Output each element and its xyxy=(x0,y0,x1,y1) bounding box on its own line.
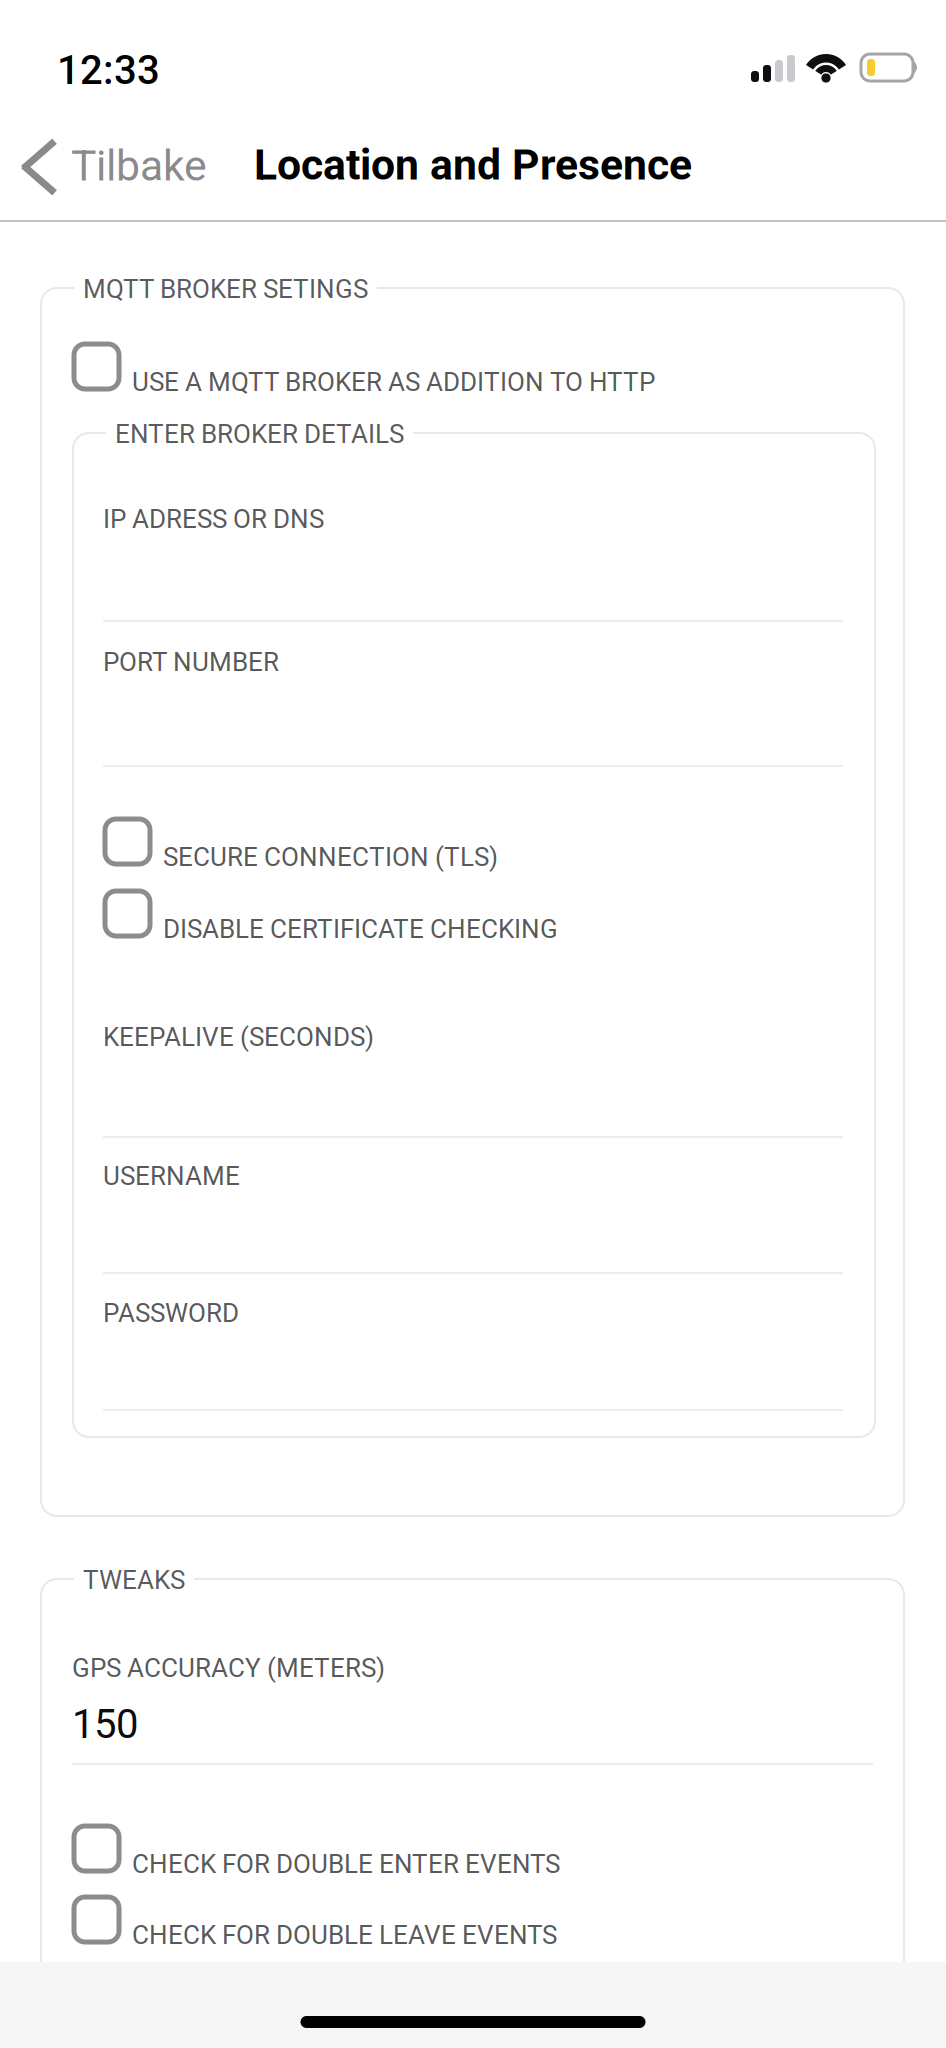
button[interactable]: USE A MQTT BROKER AS ADDITION TO HTTP xyxy=(72,342,832,395)
staticText: ENTER BROKER DETAILS xyxy=(115,419,404,449)
staticText: CHECK FOR DOUBLE ENTER EVENTS xyxy=(132,1849,560,1879)
button[interactable]: PORT NUMBER xyxy=(103,647,843,767)
button[interactable]: SECURE CONNECTION (TLS) xyxy=(103,817,863,870)
staticText: SECURE CONNECTION (TLS) xyxy=(163,842,498,872)
button[interactable]: DISABLE CERTIFICATE CHECKING xyxy=(103,889,863,942)
staticText: DISABLE CERTIFICATE CHECKING xyxy=(163,914,558,944)
button[interactable]: IP ADRESS OR DNS xyxy=(103,504,843,622)
button[interactable]: GPS ACCURACY (METERS) xyxy=(72,1653,873,1765)
button[interactable]: CHECK FOR DOUBLE LEAVE EVENTS xyxy=(72,1895,832,1948)
button[interactable]: USERNAME xyxy=(103,1161,843,1274)
staticText: PORT NUMBER xyxy=(103,647,279,677)
button[interactable]: KEEPALIVE (SECONDS) xyxy=(103,1022,843,1138)
staticText: USE A MQTT BROKER AS ADDITION TO HTTP xyxy=(132,367,655,397)
staticText: Location and Presence xyxy=(254,140,692,190)
staticText: 150 xyxy=(72,1701,138,1748)
staticText: CHECK FOR DOUBLE LEAVE EVENTS xyxy=(132,1920,557,1950)
staticText: TWEAKS xyxy=(83,1565,185,1595)
staticText: KEEPALIVE (SECONDS) xyxy=(103,1022,374,1052)
staticText: USERNAME xyxy=(103,1161,240,1191)
staticText: IP ADRESS OR DNS xyxy=(103,504,324,534)
staticText: MQTT BROKER SETINGS xyxy=(83,274,368,304)
button[interactable]: Location and Presence xyxy=(238,122,708,208)
staticText: GPS ACCURACY (METERS) xyxy=(72,1653,385,1683)
button[interactable]: Tilbake xyxy=(0,122,225,208)
staticText: Tilbake xyxy=(71,141,207,191)
button[interactable]: CHECK FOR DOUBLE ENTER EVENTS xyxy=(72,1824,832,1877)
staticText: PASSWORD xyxy=(103,1298,239,1328)
button[interactable]: PASSWORD xyxy=(103,1298,843,1411)
staticText: 12:33 xyxy=(57,47,160,94)
